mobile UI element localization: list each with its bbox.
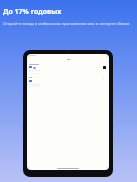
staticText: Откройте вклад в мобильном приложении ил… <box>3 21 137 26</box>
staticText: До 17% годовых <box>3 7 62 17</box>
